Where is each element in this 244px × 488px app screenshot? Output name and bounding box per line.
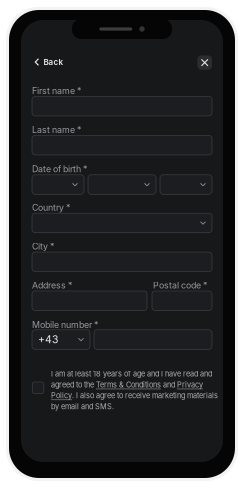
button[interactable]: [160, 175, 212, 194]
button[interactable]: +43: [32, 330, 90, 349]
button[interactable]: Accept terms and conditions: [32, 382, 44, 393]
staticText: Address *: [32, 280, 72, 291]
staticText: Mobile number *: [32, 319, 98, 330]
staticText: Date of birth *: [32, 164, 87, 174]
button[interactable]: Back: [35, 57, 64, 67]
staticText: Last name *: [32, 124, 81, 135]
staticText: Policy. I also agree to receive marketin…: [51, 391, 218, 400]
staticText: First name *: [32, 85, 81, 96]
staticText: I am at least 18 years of age and I have…: [51, 369, 212, 378]
staticText: agreed to the Terms & Conditions and Pri…: [51, 380, 203, 389]
button[interactable]: [32, 213, 212, 233]
staticText: +43: [38, 333, 58, 346]
staticText: by email and SMS.: [51, 402, 114, 411]
button[interactable]: Close: [197, 55, 212, 70]
staticText: Postal code *: [153, 280, 207, 291]
staticText: City *: [32, 241, 54, 252]
button[interactable]: [32, 175, 84, 194]
staticText: Country *: [32, 202, 70, 213]
staticText: Back: [44, 57, 64, 67]
button[interactable]: [88, 175, 156, 194]
